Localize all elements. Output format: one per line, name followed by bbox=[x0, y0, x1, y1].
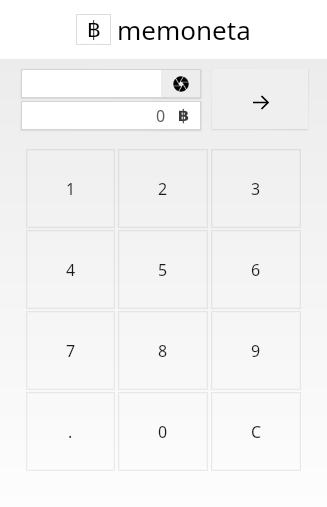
button[interactable]: 4 bbox=[26, 230, 115, 309]
staticText: 4 bbox=[66, 259, 76, 281]
staticText: 0 bbox=[156, 105, 166, 127]
button[interactable]: . bbox=[26, 392, 115, 471]
staticText: . bbox=[68, 421, 73, 443]
button[interactable]: 0 bbox=[21, 101, 201, 130]
button[interactable]: 3 bbox=[211, 149, 301, 228]
button[interactable]: C bbox=[211, 392, 301, 471]
staticText: 2 bbox=[158, 178, 168, 200]
button[interactable]: Send payment bbox=[212, 69, 308, 129]
staticText: 5 bbox=[158, 259, 168, 281]
button[interactable]: 9 bbox=[211, 311, 301, 390]
button[interactable]: Scan QR code with camera bbox=[161, 70, 201, 97]
staticText: ฿ bbox=[87, 17, 101, 43]
staticText: 1 bbox=[66, 178, 76, 200]
staticText: ฿ bbox=[178, 106, 190, 125]
button[interactable]: 7 bbox=[26, 311, 115, 390]
button[interactable]: 1 bbox=[26, 149, 115, 228]
staticText: C bbox=[251, 421, 262, 443]
staticText: 9 bbox=[251, 340, 261, 362]
staticText: 7 bbox=[66, 340, 76, 362]
button[interactable]: 5 bbox=[118, 230, 208, 309]
button[interactable]: 6 bbox=[211, 230, 301, 309]
staticText: 8 bbox=[158, 340, 168, 362]
button[interactable]: 2 bbox=[118, 149, 208, 228]
button[interactable]: 0 bbox=[118, 392, 208, 471]
button[interactable]: 8 bbox=[118, 311, 208, 390]
staticText: 3 bbox=[251, 178, 261, 200]
staticText: memoneta bbox=[117, 12, 251, 47]
staticText: 6 bbox=[251, 259, 261, 281]
staticText: 0 bbox=[158, 421, 168, 443]
button[interactable]: ฿ bbox=[76, 12, 251, 47]
